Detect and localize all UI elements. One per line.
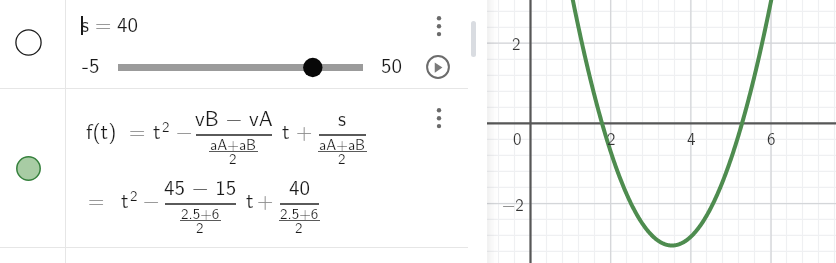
staticText: 6 bbox=[767, 125, 776, 150]
button[interactable]: Slider s bbox=[113, 56, 368, 79]
staticText: 40 bbox=[289, 171, 310, 202]
staticText: t bbox=[121, 184, 129, 215]
staticText: − bbox=[176, 115, 193, 146]
staticText: 4 bbox=[687, 125, 696, 150]
staticText: s bbox=[338, 102, 347, 133]
staticText: 2 bbox=[162, 115, 170, 137]
staticText: 45 − 15 bbox=[164, 171, 237, 202]
button[interactable]: More options bbox=[427, 105, 451, 129]
staticText: 2 bbox=[512, 30, 521, 55]
staticText: 2 bbox=[196, 216, 204, 238]
staticText: − bbox=[143, 184, 160, 215]
staticText: 2 bbox=[229, 147, 237, 169]
staticText: 2 bbox=[130, 184, 138, 206]
button[interactable]: Show or hide function bbox=[15, 155, 42, 182]
staticText: 50 bbox=[381, 49, 402, 80]
staticText: + bbox=[296, 115, 313, 146]
staticText: 2.5+6 bbox=[181, 202, 220, 224]
staticText: 0 bbox=[513, 125, 522, 150]
staticText: t bbox=[282, 115, 290, 146]
staticText: t bbox=[246, 184, 254, 215]
button[interactable]: Play animation bbox=[426, 55, 450, 79]
button[interactable]: More options bbox=[427, 13, 451, 37]
staticText: s bbox=[81, 8, 90, 39]
staticText: aA+aB bbox=[319, 133, 366, 155]
staticText: aA+aB bbox=[210, 133, 257, 155]
staticText: 2 bbox=[607, 125, 616, 150]
staticText: f(t) bbox=[86, 115, 117, 146]
button[interactable]: Show or hide slider bbox=[15, 29, 42, 56]
staticText: + bbox=[257, 184, 274, 215]
staticText: = bbox=[129, 115, 146, 146]
staticText: = bbox=[95, 8, 112, 39]
staticText: 2.5+6 bbox=[280, 202, 319, 224]
staticText: 2 bbox=[338, 147, 346, 169]
staticText: −2 bbox=[502, 191, 524, 216]
staticText: -5 bbox=[82, 49, 100, 80]
staticText: vB − vA bbox=[195, 102, 273, 133]
staticText: t bbox=[153, 115, 161, 146]
staticText: = bbox=[88, 184, 105, 215]
staticText: 40 bbox=[117, 8, 138, 39]
staticText: 2 bbox=[295, 216, 303, 238]
